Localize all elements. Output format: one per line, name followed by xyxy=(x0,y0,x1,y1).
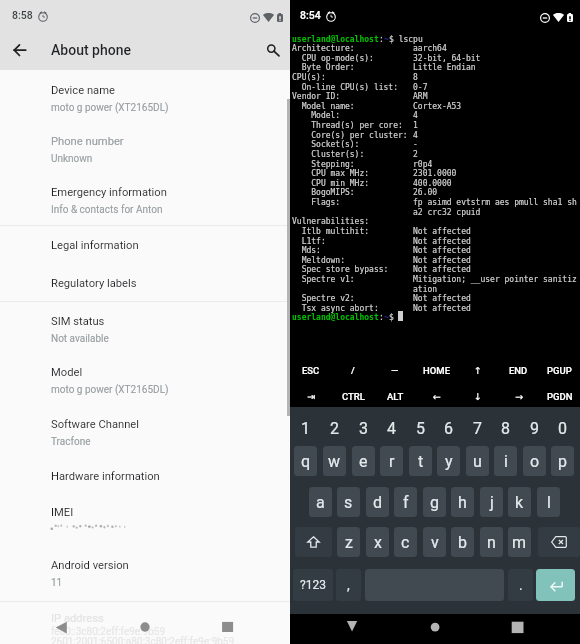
button[interactable]: CTRL xyxy=(332,384,374,408)
button[interactable]: Search xyxy=(258,36,286,64)
button[interactable]: o xyxy=(523,446,546,476)
button[interactable]: 2 xyxy=(323,413,346,443)
button[interactable]: e xyxy=(352,446,375,476)
button[interactable]: a xyxy=(309,487,332,517)
button[interactable]: ⇥ xyxy=(290,384,332,408)
button[interactable]: Recents xyxy=(218,616,238,636)
button[interactable]: . xyxy=(508,569,533,601)
button[interactable]: ↑ xyxy=(457,358,498,382)
button[interactable]: s xyxy=(337,487,360,517)
staticText: ↑ xyxy=(474,365,482,376)
button[interactable]: Shift xyxy=(295,527,332,557)
button[interactable]: 8 xyxy=(494,413,517,443)
button[interactable]: Recents xyxy=(502,616,522,636)
button[interactable]: Backspace xyxy=(538,527,580,557)
button[interactable]: y xyxy=(437,446,460,476)
button[interactable]: Emergency information xyxy=(0,180,290,222)
staticText: ?123 xyxy=(300,578,326,592)
staticText: Android version xyxy=(51,559,129,572)
staticText: SIM status xyxy=(51,315,105,328)
button[interactable]: i xyxy=(494,446,517,476)
button[interactable]: Regulatory labels xyxy=(0,271,290,301)
button[interactable]: w xyxy=(323,446,346,476)
button[interactable]: h xyxy=(451,487,474,517)
button[interactable]: d xyxy=(366,487,389,517)
button[interactable]: HOME xyxy=(416,358,457,382)
button[interactable]: 1 xyxy=(294,413,317,443)
button[interactable]: 3 xyxy=(352,413,375,443)
button[interactable]: Device name xyxy=(0,78,290,120)
button[interactable]: 7 xyxy=(466,413,489,443)
button[interactable]: Phone number xyxy=(0,129,290,171)
button[interactable]: PGDN xyxy=(539,384,580,408)
button[interactable]: f xyxy=(394,487,417,517)
staticText: p xyxy=(558,452,567,471)
button[interactable]: q xyxy=(294,446,317,476)
staticText: Flags: xyxy=(292,198,341,207)
staticText: PGDN xyxy=(547,391,573,402)
button[interactable]: Enter xyxy=(536,569,575,601)
button[interactable]: , xyxy=(336,569,361,601)
button[interactable]: r xyxy=(380,446,403,476)
button[interactable]: m xyxy=(508,527,531,557)
button[interactable]: ↓ xyxy=(457,384,498,408)
button[interactable]: Hardware information xyxy=(0,464,290,494)
button[interactable]: Home xyxy=(135,616,155,636)
button[interactable]: Legal information xyxy=(0,233,290,263)
button[interactable]: l xyxy=(537,487,560,517)
button[interactable]: PGUP xyxy=(539,358,580,382)
staticText: Spec store bypass: xyxy=(292,265,389,274)
button[interactable]: Home xyxy=(425,616,445,636)
button[interactable]: 0 xyxy=(551,413,574,443)
button[interactable]: Model xyxy=(0,360,290,402)
button[interactable]: b xyxy=(451,527,474,557)
staticText: r xyxy=(389,452,395,471)
button[interactable]: g xyxy=(423,487,446,517)
button[interactable]: 5 xyxy=(409,413,432,443)
staticText: fp asimd evtstrm aes pmull sha1 sh xyxy=(413,198,577,207)
button[interactable]: ← xyxy=(416,384,457,408)
staticText: d xyxy=(373,493,383,512)
button[interactable]: t xyxy=(409,446,432,476)
button[interactable]: → xyxy=(498,384,539,408)
button[interactable]: END xyxy=(498,358,539,382)
button[interactable]: ESC xyxy=(290,358,332,382)
staticText: CPU min MHz: xyxy=(292,179,370,188)
button[interactable]: Back xyxy=(51,616,71,636)
staticText: Legal information xyxy=(51,239,139,252)
button[interactable]: j xyxy=(480,487,503,517)
staticText: Vulnerabilities: xyxy=(292,217,370,226)
button[interactable]: Software Channel xyxy=(0,412,290,454)
button[interactable]: u xyxy=(466,446,489,476)
button[interactable]: 9 xyxy=(523,413,546,443)
button[interactable]: IMEI xyxy=(0,500,290,530)
button[interactable]: k xyxy=(508,487,531,517)
staticText: CPU(s): xyxy=(292,73,326,82)
button[interactable]: ?123 xyxy=(293,569,333,601)
staticText: Spectre v1: xyxy=(292,275,355,284)
staticText: q xyxy=(301,452,311,471)
staticText: IP address xyxy=(51,612,104,625)
button[interactable]: 4 xyxy=(380,413,403,443)
button[interactable]: n xyxy=(480,527,503,557)
staticText: Not affected xyxy=(413,256,471,265)
staticText: / xyxy=(351,365,355,376)
button[interactable]: z xyxy=(337,527,360,557)
staticText: : xyxy=(379,313,384,322)
button[interactable]: Back xyxy=(342,616,362,636)
button[interactable]: — xyxy=(374,358,416,382)
staticText: Stepping: xyxy=(292,160,355,169)
button[interactable]: / xyxy=(332,358,374,382)
staticText: fe80::3c80:2eff:fe9e:9b59 xyxy=(51,626,166,638)
button[interactable]: x xyxy=(366,527,389,557)
button[interactable]: p xyxy=(551,446,574,476)
button[interactable]: ALT xyxy=(374,384,416,408)
button[interactable]: Back xyxy=(6,36,34,64)
button[interactable]: SIM status xyxy=(0,309,290,351)
button[interactable]: c xyxy=(394,527,417,557)
staticText: Emergency information xyxy=(51,186,167,199)
button[interactable]: 6 xyxy=(437,413,460,443)
button[interactable]: v xyxy=(423,527,446,557)
button[interactable]: Android version xyxy=(0,553,290,595)
